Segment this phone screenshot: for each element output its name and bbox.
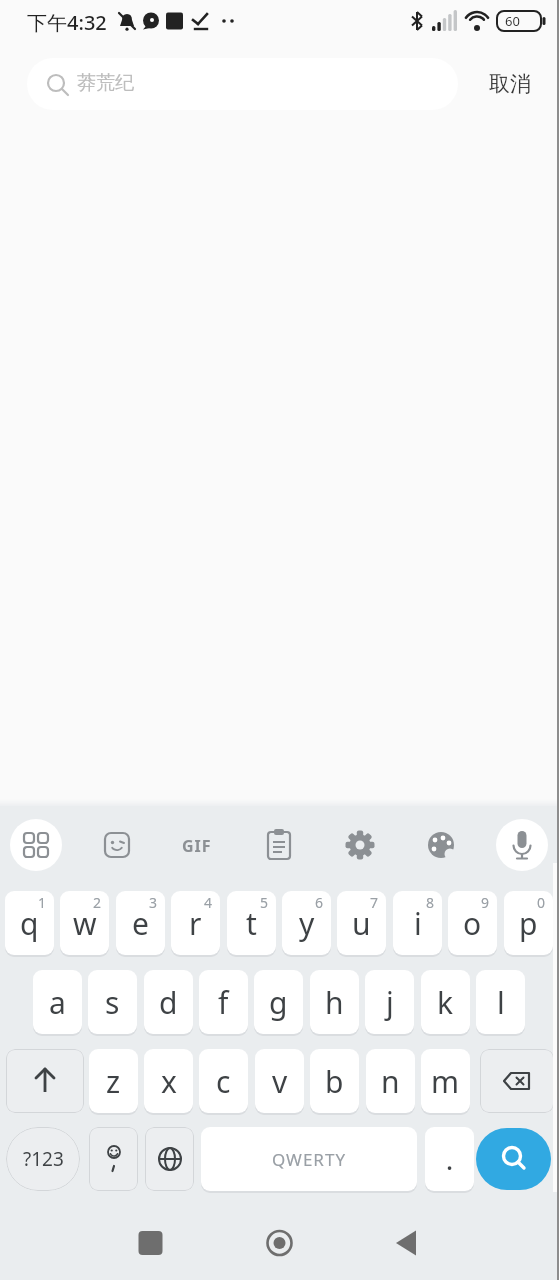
button[interactable] (255, 821, 303, 869)
button[interactable]: c (199, 1049, 248, 1113)
button[interactable]: l (476, 970, 525, 1034)
staticText: g (269, 982, 288, 1023)
button[interactable]: p (504, 891, 553, 955)
staticText: 取消 (489, 71, 531, 97)
staticText: 7 (370, 893, 379, 912)
button[interactable] (10, 819, 62, 871)
button[interactable]: q (5, 891, 54, 955)
button[interactable]: n (366, 1049, 415, 1113)
button[interactable] (496, 819, 548, 871)
staticText: w (73, 903, 97, 944)
button[interactable] (336, 821, 384, 869)
staticText: s (105, 982, 120, 1023)
staticText: 5 (260, 893, 269, 912)
staticText: y (299, 903, 315, 944)
button[interactable]: QWERTY (201, 1127, 417, 1191)
button[interactable]: v (255, 1049, 304, 1113)
staticText: 1 (38, 893, 47, 912)
button[interactable]: f (199, 970, 248, 1034)
staticText: z (106, 1061, 121, 1102)
button[interactable]: 莽荒纪 (27, 58, 458, 110)
staticText: j (386, 982, 394, 1023)
staticText: 莽荒纪 (77, 71, 134, 95)
button[interactable]: i (393, 891, 442, 955)
button[interactable]: a (33, 970, 82, 1034)
staticText: ?123 (23, 1146, 64, 1172)
button[interactable]: b (310, 1049, 359, 1113)
staticText: n (381, 1061, 400, 1102)
button[interactable]: GIF (182, 835, 212, 857)
staticText: b (325, 1061, 344, 1102)
staticText: 下午4:32 (27, 9, 107, 36)
staticText: 4 (204, 893, 213, 912)
button[interactable] (255, 1219, 303, 1267)
staticText: 9 (481, 893, 490, 912)
button[interactable]: k (421, 970, 470, 1034)
button[interactable] (417, 821, 465, 869)
staticText: k (437, 982, 454, 1023)
staticText: d (159, 982, 178, 1023)
staticText: m (431, 1061, 460, 1102)
staticText: 6 (315, 893, 324, 912)
staticText: o (463, 903, 482, 944)
staticText: 60 (505, 12, 520, 30)
button[interactable] (93, 821, 141, 869)
button[interactable] (6, 1049, 84, 1113)
button[interactable]: t (227, 891, 276, 955)
button[interactable] (126, 1219, 174, 1267)
staticText: p (519, 903, 538, 944)
staticText: f (218, 982, 229, 1023)
staticText: r (189, 903, 202, 944)
staticText: QWERTY (272, 1148, 347, 1171)
button[interactable] (145, 1127, 194, 1191)
staticText: h (325, 982, 344, 1023)
staticText: q (20, 903, 39, 944)
button[interactable] (476, 1128, 551, 1190)
button[interactable] (480, 1049, 554, 1113)
button[interactable]: z (89, 1049, 138, 1113)
staticText: c (216, 1061, 231, 1102)
staticText: 0 (537, 893, 546, 912)
staticText: . (446, 1142, 454, 1177)
button[interactable]: w (60, 891, 109, 955)
button[interactable]: . (425, 1127, 474, 1191)
button[interactable]: m (421, 1049, 470, 1113)
button[interactable] (174, 821, 222, 869)
staticText: 3 (149, 893, 158, 912)
button[interactable]: s (88, 970, 137, 1034)
button[interactable]: g (254, 970, 303, 1034)
button[interactable]: e (116, 891, 165, 955)
button[interactable]: o (448, 891, 497, 955)
button[interactable]: 取消 (480, 58, 540, 110)
button[interactable]: d (144, 970, 193, 1034)
staticText: x (161, 1061, 177, 1102)
staticText: e (132, 903, 149, 944)
staticText: 2 (93, 893, 102, 912)
button[interactable] (89, 1127, 138, 1191)
staticText: l (497, 982, 505, 1023)
button[interactable]: ?123 (6, 1127, 80, 1191)
button[interactable]: h (310, 970, 359, 1034)
button[interactable]: r (171, 891, 220, 955)
button[interactable] (382, 1219, 430, 1267)
staticText: t (246, 903, 257, 944)
staticText: i (414, 903, 422, 944)
button[interactable]: x (144, 1049, 193, 1113)
button[interactable]: j (365, 970, 414, 1034)
staticText: u (352, 903, 371, 944)
staticText: v (272, 1061, 288, 1102)
button[interactable]: u (337, 891, 386, 955)
staticText: 8 (426, 893, 435, 912)
button[interactable]: y (282, 891, 331, 955)
staticText: a (49, 982, 66, 1023)
